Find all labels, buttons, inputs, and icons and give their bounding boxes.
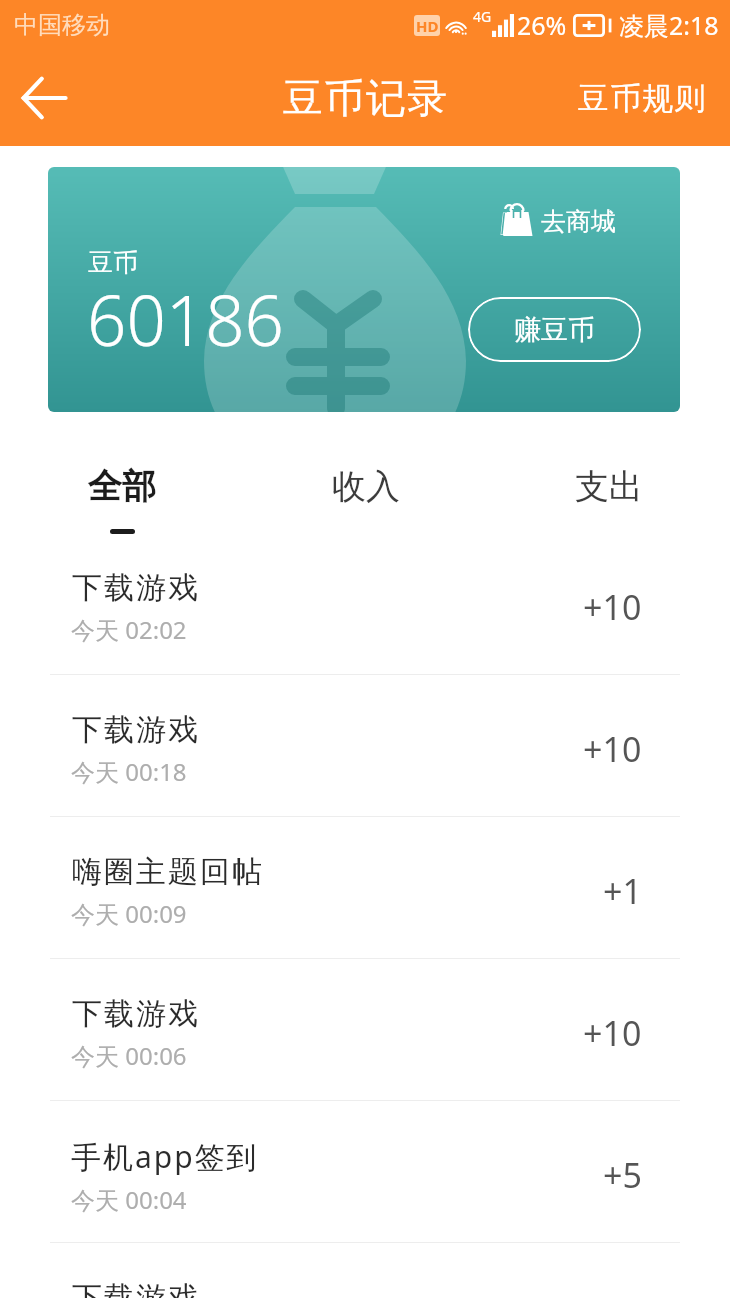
staticText: 4G <box>473 7 492 26</box>
button[interactable]: Back <box>10 64 78 132</box>
button[interactable]: 下载游戏 <box>0 1243 730 1298</box>
staticText: 今天 00:06 <box>71 1039 187 1072</box>
staticText: +10 <box>583 584 642 630</box>
button[interactable]: 嗨圈主题回帖 <box>0 817 730 959</box>
staticText: 嗨圈主题回帖 <box>71 853 263 891</box>
staticText: 今天 02:02 <box>71 613 187 646</box>
button[interactable]: 收入 <box>244 444 487 533</box>
staticText: 今天 00:09 <box>71 897 187 930</box>
staticText: 今天 00:18 <box>71 755 187 788</box>
staticText: 60186 <box>87 272 284 366</box>
button[interactable]: 手机app签到 <box>0 1101 730 1243</box>
button[interactable]: 下载游戏 <box>0 533 730 675</box>
staticText: 下载游戏 <box>71 1279 199 1298</box>
staticText: 凌晨2:18 <box>619 8 719 42</box>
staticText: +5 <box>603 1152 642 1198</box>
staticText: 下载游戏 <box>71 995 199 1033</box>
button[interactable]: 去商城 <box>499 203 616 239</box>
staticText: 豆币规则 <box>578 79 707 118</box>
staticText: +10 <box>583 1010 642 1056</box>
button[interactable]: 豆币规则 <box>552 59 730 138</box>
staticText: 收入 <box>332 465 400 508</box>
staticText: 支出 <box>575 465 643 508</box>
staticText: 今天 00:04 <box>71 1183 187 1216</box>
staticText: 下载游戏 <box>71 569 199 607</box>
staticText: 去商城 <box>541 206 616 237</box>
button[interactable]: 支出 <box>487 444 730 533</box>
staticText: HD <box>416 16 439 36</box>
button[interactable]: 下载游戏 <box>0 675 730 817</box>
staticText: +10 <box>583 726 642 772</box>
staticText: 下载游戏 <box>71 711 199 749</box>
staticText: 豆币 <box>88 247 138 278</box>
button[interactable]: 下载游戏 <box>0 959 730 1101</box>
staticText: 全部 <box>88 465 156 508</box>
staticText: 手机app签到 <box>71 1136 259 1177</box>
button[interactable]: 全部 <box>0 444 244 533</box>
staticText: +1 <box>603 868 642 914</box>
staticText: 中国移动 <box>14 10 110 40</box>
staticText: 26% <box>517 8 567 42</box>
staticText: 豆币记录 <box>282 73 448 123</box>
staticText: 赚豆币 <box>514 313 595 347</box>
button[interactable]: 赚豆币 <box>468 297 641 362</box>
